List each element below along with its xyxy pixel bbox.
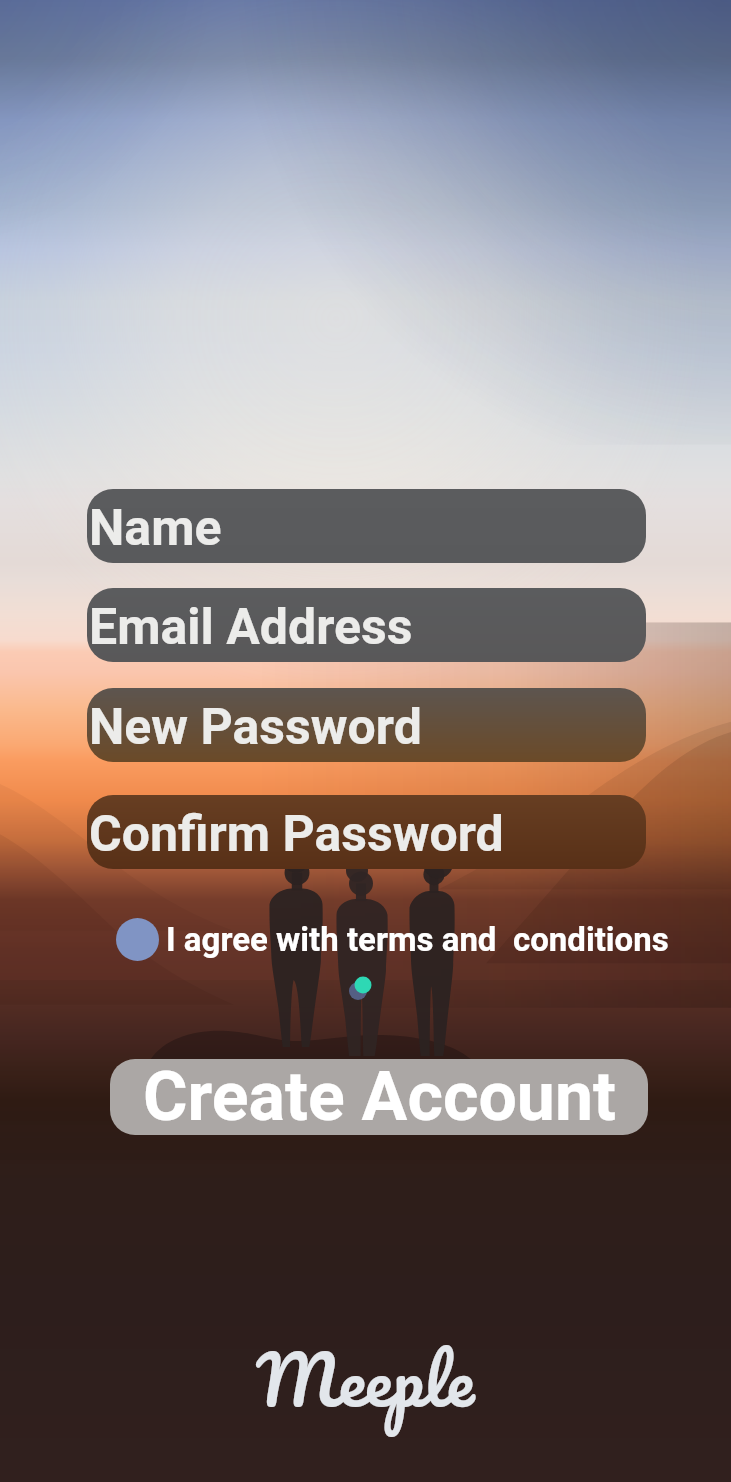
button[interactable]: Confirm Password xyxy=(87,795,646,869)
staticText: Meeple xyxy=(256,1320,475,1438)
staticText: I agree with terms and conditions xyxy=(166,920,669,959)
other: Agree to terms checkbox xyxy=(116,918,159,961)
staticText: New Password xyxy=(89,698,422,757)
staticText: Confirm Password xyxy=(89,805,504,864)
button[interactable]: Create Account xyxy=(110,1059,648,1135)
staticText: Name xyxy=(89,499,222,558)
button[interactable]: Agree to terms checkbox xyxy=(116,916,669,962)
button[interactable]: Email Address xyxy=(87,588,646,662)
staticText: Create Account xyxy=(143,1059,616,1133)
staticText: Email Address xyxy=(89,598,413,657)
button[interactable]: New Password xyxy=(87,688,646,762)
button[interactable]: Name xyxy=(87,489,646,563)
